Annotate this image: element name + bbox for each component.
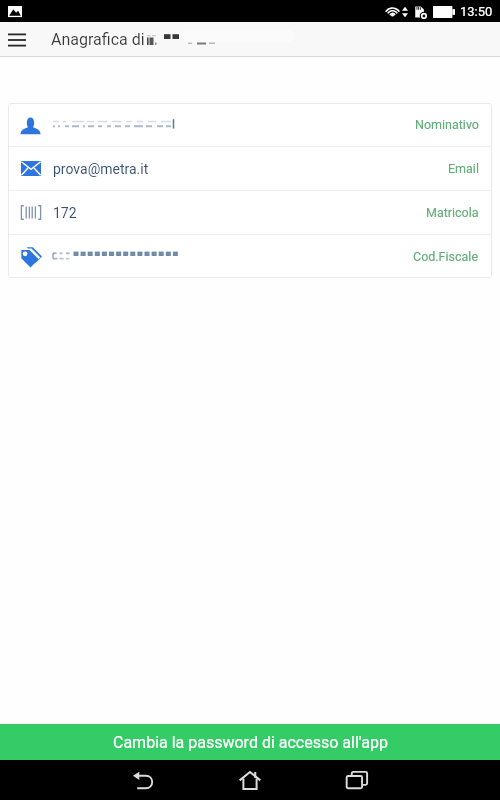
button[interactable]: Back: [112, 760, 174, 800]
staticText: Matricola: [426, 205, 479, 220]
staticText: Anagrafica di: [51, 30, 149, 49]
staticText: 172: [53, 205, 426, 221]
staticText: Cambia la password di accesso all'app: [113, 733, 388, 752]
button[interactable]: Cod.Fiscale: [8, 235, 492, 278]
staticText: prova@metra.it: [53, 161, 448, 177]
staticText: Cod.Fiscale: [413, 249, 479, 264]
staticText: 13:50: [460, 4, 493, 19]
button[interactable]: Menu: [0, 23, 34, 57]
button[interactable]: 172: [8, 191, 492, 234]
button[interactable]: Home: [219, 760, 281, 800]
staticText: Email: [448, 161, 479, 176]
button[interactable]: Recents: [326, 760, 388, 800]
button[interactable]: prova@metra.it: [8, 147, 492, 190]
button[interactable]: Nominativo: [8, 103, 492, 146]
button[interactable]: Cambia la password di accesso all'app: [0, 724, 500, 760]
staticText: Nominativo: [415, 117, 479, 132]
